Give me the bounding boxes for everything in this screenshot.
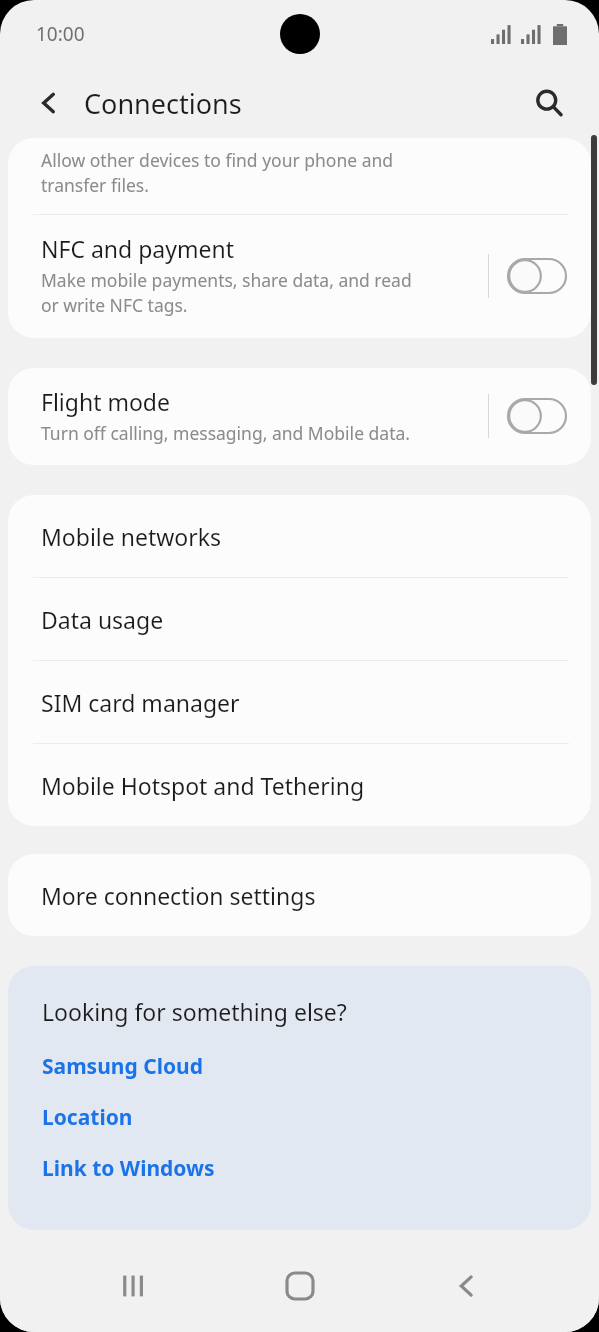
staticText: Looking for something else? <box>42 996 347 1027</box>
button[interactable]: More connection settings <box>8 854 591 936</box>
button[interactable]: SIM card manager <box>8 661 591 743</box>
staticText: Flight mode <box>41 386 170 417</box>
button[interactable]: NFC and payment switch <box>505 252 569 300</box>
staticText: SIM card manager <box>41 687 240 718</box>
staticText: Turn off calling, messaging, and Mobile … <box>41 421 410 445</box>
button[interactable]: Recents <box>97 1251 167 1321</box>
button[interactable]: Link to Windows <box>42 1151 215 1186</box>
button[interactable]: Allow other devices to find your phone a… <box>8 138 591 214</box>
staticText: Connections <box>84 85 242 122</box>
button[interactable]: Search <box>525 79 573 127</box>
staticText: Samsung Cloud <box>42 1052 203 1081</box>
staticText: Data usage <box>41 604 164 635</box>
staticText: Mobile networks <box>41 521 222 552</box>
button[interactable]: Flight mode <box>8 368 591 465</box>
button[interactable]: Back <box>26 80 72 126</box>
button[interactable]: Data usage <box>8 578 591 660</box>
staticText: Make mobile payments, share data, and re… <box>41 268 412 318</box>
button[interactable]: NFC and payment <box>8 215 591 338</box>
staticText: More connection settings <box>41 880 316 911</box>
staticText: NFC and payment <box>41 233 234 264</box>
staticText: Link to Windows <box>42 1154 215 1183</box>
button[interactable]: Flight mode switch <box>505 392 569 440</box>
button[interactable]: Back <box>432 1251 502 1321</box>
button[interactable]: Samsung Cloud <box>42 1049 203 1084</box>
staticText: Mobile Hotspot and Tethering <box>41 770 365 801</box>
staticText: Allow other devices to find your phone a… <box>41 148 394 198</box>
staticText: 10:00 <box>36 21 85 47</box>
button[interactable]: Mobile networks <box>8 495 591 577</box>
button[interactable]: Home <box>265 1251 335 1321</box>
staticText: Location <box>42 1103 133 1132</box>
button[interactable]: Location <box>42 1100 133 1135</box>
button[interactable]: Mobile Hotspot and Tethering <box>8 744 591 826</box>
